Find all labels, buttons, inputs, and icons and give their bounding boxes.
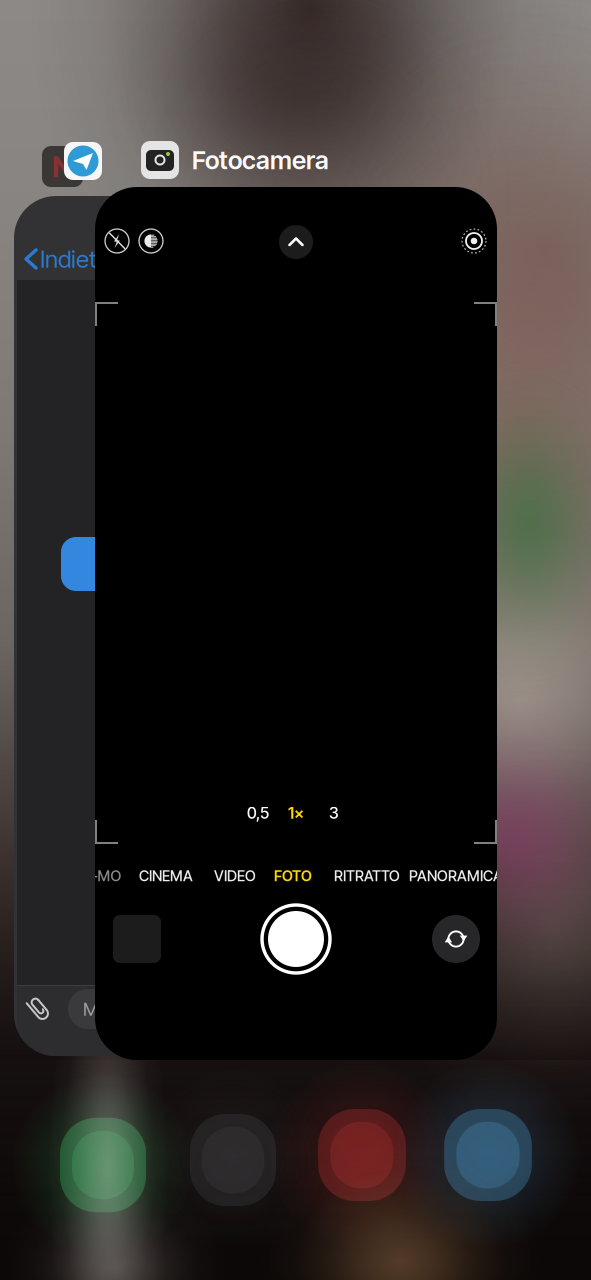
button[interactable]: 3: [329, 804, 339, 822]
staticText: N: [52, 149, 73, 184]
staticText: Messaggio: [83, 998, 173, 1020]
staticText: FOTO: [274, 867, 312, 885]
button[interactable]: RITRATTO: [334, 867, 400, 885]
button[interactable]: Flash off: [105, 229, 129, 253]
button[interactable]: More camera controls: [279, 225, 313, 259]
button[interactable]: 0,5: [247, 804, 269, 822]
button[interactable]: Night mode: [139, 229, 163, 253]
staticText: 1×: [288, 804, 304, 822]
button[interactable]: VIDEO: [214, 867, 256, 885]
staticText: PANORAMICA: [409, 867, 503, 885]
button[interactable]: Take photo: [262, 905, 330, 973]
button[interactable]: Indietro: [22, 245, 222, 273]
staticText: CINEMA: [139, 867, 193, 885]
staticText: 3: [329, 804, 339, 822]
button[interactable]: 1×: [288, 804, 304, 822]
staticText: Fotocamera: [192, 145, 329, 175]
button[interactable]: CINEMA: [139, 867, 193, 885]
staticText: Indietro: [40, 245, 117, 273]
button[interactable]: PANORAMICA: [409, 867, 503, 885]
button[interactable]: Photo library: [113, 915, 161, 963]
button[interactable]: SLO-MO: [64, 867, 121, 885]
staticText: VIDEO: [214, 867, 256, 885]
staticText: 0,5: [247, 804, 269, 822]
button[interactable]: Switch camera: [432, 915, 480, 963]
staticText: RITRATTO: [334, 867, 400, 885]
staticText: SLO-MO: [64, 867, 121, 885]
button[interactable]: Live Photo: [462, 229, 486, 253]
button[interactable]: FOTO: [274, 867, 312, 885]
